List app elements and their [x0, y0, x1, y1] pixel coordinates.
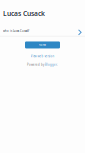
- button[interactable]: who is Lucas Cusack?: [0, 26, 85, 36]
- staticText: View web version: [30, 54, 54, 58]
- button[interactable]: View web version: [30, 54, 54, 58]
- staticText: Lucas Cusack: [3, 9, 45, 18]
- staticText: .: [57, 63, 58, 66]
- button[interactable]: Blogger: [45, 63, 57, 66]
- staticText: Home: [38, 43, 46, 47]
- staticText: Powered by: [27, 63, 45, 66]
- staticText: who is Lucas Cusack?: [3, 29, 29, 33]
- staticText: Blogger: [45, 63, 57, 66]
- button[interactable]: Home: [25, 41, 60, 48]
